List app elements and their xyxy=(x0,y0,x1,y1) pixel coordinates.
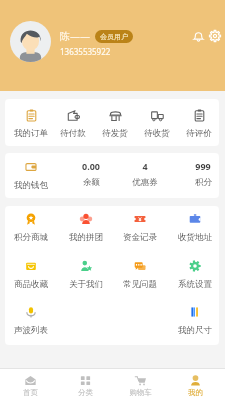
staticText: 13635535922 xyxy=(60,46,111,57)
button[interactable]: 待付款 xyxy=(52,99,94,139)
button[interactable]: 0.00 xyxy=(70,153,112,188)
staticText: 待发货 xyxy=(102,128,128,139)
button[interactable]: 待评价 xyxy=(178,99,219,139)
staticText: 4 xyxy=(142,160,148,172)
button[interactable]: 积分商城 xyxy=(10,213,52,243)
button[interactable]: 我的订单 xyxy=(10,99,52,139)
button[interactable]: 关于我们 xyxy=(65,260,107,290)
staticText: 余额 xyxy=(83,177,100,188)
button[interactable]: 我的钱包 xyxy=(10,153,52,191)
staticText: 优惠券 xyxy=(132,177,158,188)
button[interactable]: 声波列表 xyxy=(10,306,52,336)
staticText: 首页 xyxy=(23,388,38,397)
button[interactable]: Notifications xyxy=(190,28,206,44)
button[interactable]: 我的尺寸 xyxy=(174,306,216,336)
staticText: 陈—— xyxy=(60,29,90,43)
button[interactable]: 系统设置 xyxy=(174,260,216,290)
button[interactable]: 4 xyxy=(124,153,166,188)
button[interactable]: 会员用户 xyxy=(95,30,133,43)
button[interactable]: 分类 xyxy=(60,369,110,400)
button[interactable]: 商品收藏 xyxy=(10,260,52,290)
staticText: 积分 xyxy=(195,177,212,188)
staticText: 待付款 xyxy=(60,128,86,139)
staticText: 收货地址 xyxy=(178,232,212,243)
staticText: 我的订单 xyxy=(14,128,48,139)
button[interactable]: 待收货 xyxy=(136,99,178,139)
button[interactable]: 首页 xyxy=(5,369,55,400)
button[interactable]: 我的 xyxy=(170,369,220,400)
staticText: 积分商城 xyxy=(14,232,48,243)
button[interactable]: Settings xyxy=(207,28,223,44)
button[interactable]: Avatar xyxy=(10,21,51,62)
staticText: 会员用户 xyxy=(100,32,128,41)
staticText: 分类 xyxy=(78,388,93,397)
button[interactable]: 待发货 xyxy=(94,99,136,139)
staticText: 常见问题 xyxy=(123,279,157,290)
staticText: 资金记录 xyxy=(123,232,157,243)
staticText: 商品收藏 xyxy=(14,279,48,290)
staticText: 我的钱包 xyxy=(14,180,48,191)
button[interactable]: 购物车 xyxy=(115,369,165,400)
staticText: 待评价 xyxy=(186,128,212,139)
button[interactable]: 我的拼团 xyxy=(65,213,107,243)
button[interactable]: 999 xyxy=(182,153,219,188)
button[interactable]: 资金记录 xyxy=(119,213,161,243)
staticText: 0.00 xyxy=(82,160,100,172)
staticText: 关于我们 xyxy=(69,279,103,290)
button[interactable]: 常见问题 xyxy=(119,260,161,290)
staticText: 购物车 xyxy=(129,388,152,397)
staticText: 999 xyxy=(195,160,211,172)
staticText: 系统设置 xyxy=(178,279,212,290)
staticText: 我的 xyxy=(188,388,203,397)
staticText: 我的尺寸 xyxy=(178,325,212,336)
staticText: 待收货 xyxy=(144,128,170,139)
staticText: 我的拼团 xyxy=(69,232,103,243)
staticText: 声波列表 xyxy=(14,325,48,336)
button[interactable]: 收货地址 xyxy=(174,213,216,243)
